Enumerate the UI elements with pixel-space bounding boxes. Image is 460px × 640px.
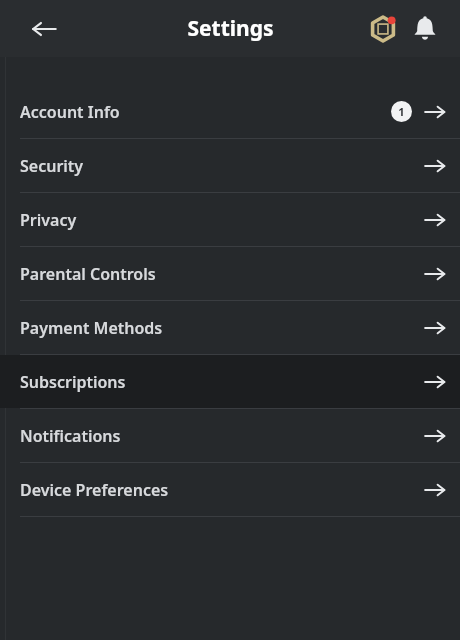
button[interactable]: Subscriptions: [0, 355, 460, 408]
button[interactable]: Notifications: [0, 409, 460, 462]
button[interactable]: Account Info: [0, 85, 460, 138]
button[interactable]: Security: [0, 139, 460, 192]
button[interactable]: Parental Controls: [0, 247, 460, 300]
staticText: 1: [398, 104, 405, 119]
staticText: Notifications: [20, 425, 121, 447]
button[interactable]: Rewards: [362, 8, 404, 50]
staticText: Parental Controls: [20, 263, 156, 285]
button[interactable]: Back: [22, 7, 66, 51]
button[interactable]: Notifications: [404, 8, 446, 50]
staticText: Payment Methods: [20, 317, 163, 339]
staticText: Account Info: [20, 101, 120, 123]
button[interactable]: Device Preferences: [0, 463, 460, 516]
staticText: Subscriptions: [20, 371, 126, 393]
staticText: Security: [20, 155, 84, 177]
button[interactable]: Payment Methods: [0, 301, 460, 354]
staticText: Device Preferences: [20, 479, 169, 501]
staticText: Settings: [187, 14, 274, 43]
button[interactable]: Privacy: [0, 193, 460, 246]
staticText: Privacy: [20, 209, 77, 231]
